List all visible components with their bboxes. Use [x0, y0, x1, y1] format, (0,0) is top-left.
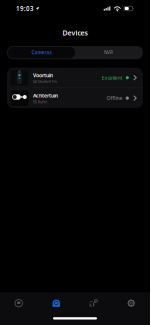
button[interactable]: NVR — [75, 47, 142, 58]
staticText: Devices — [62, 28, 87, 37]
staticText: Offline — [106, 95, 122, 102]
staticText: G5 Bullet — [33, 100, 47, 104]
button[interactable]: Settings — [112, 294, 150, 312]
button[interactable]: Devices — [37, 294, 75, 312]
button[interactable]: Viewport — [0, 294, 37, 312]
button[interactable]: Voortuin — [7, 68, 143, 88]
staticText: NVR — [104, 49, 113, 56]
staticText: Achtertuin — [33, 92, 58, 99]
button[interactable]: Access — [75, 294, 112, 312]
button[interactable]: Cameras — [8, 47, 75, 58]
staticText: Voortuin — [33, 72, 53, 79]
staticText: Excellent — [101, 74, 122, 81]
button[interactable]: Achtertuin — [7, 88, 143, 108]
staticText: 19:03 — [16, 4, 34, 13]
staticText: G4 Doorbell Pro — [33, 79, 57, 84]
staticText: Cameras — [31, 49, 51, 56]
